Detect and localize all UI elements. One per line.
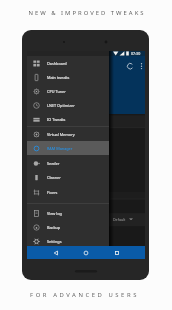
staticText: 07:30 (131, 51, 141, 56)
button[interactable]: Fixers (27, 185, 109, 199)
staticText: CPU Tuner (47, 89, 66, 94)
button[interactable]: Dashboard (27, 56, 109, 70)
button[interactable]: CPU Tuner (27, 84, 109, 98)
button[interactable]: Virtual Memory (27, 127, 109, 141)
staticText: Settings (47, 239, 62, 244)
staticText: Backup (47, 225, 61, 230)
button[interactable]: Backup (27, 220, 109, 234)
button[interactable]: Cleaner (27, 170, 109, 184)
button[interactable]: Recents (110, 246, 123, 259)
staticText: Virtual Memory (47, 132, 75, 137)
button[interactable]: Default (113, 214, 133, 224)
button[interactable]: View log (27, 206, 109, 220)
button[interactable]: RAM Manager (27, 141, 109, 155)
staticText: RAM Manager (47, 146, 73, 151)
button[interactable]: Seeder (27, 156, 109, 170)
staticText: IO Tweaks (47, 117, 66, 122)
staticText: View log (47, 211, 62, 216)
button[interactable]: Home (79, 246, 92, 259)
staticText: Default (113, 217, 126, 222)
button[interactable]: LNET Optimizer (27, 98, 109, 112)
staticText: Cleaner (47, 175, 61, 180)
staticText: FOR ADVANCED USERS (30, 291, 139, 299)
staticText: Main tweaks (47, 75, 70, 80)
staticText: Seeder (47, 161, 60, 166)
staticText: Fixers (47, 190, 58, 195)
button[interactable]: IO Tweaks (27, 112, 109, 126)
staticText: Dashboard (47, 61, 67, 66)
staticText: LNET Optimizer (47, 103, 75, 108)
staticText: NEW & IMPROVED TWEAKS (28, 9, 146, 17)
button[interactable]: Main tweaks (27, 70, 109, 84)
button[interactable]: Settings (27, 234, 109, 248)
button[interactable]: Back (49, 246, 62, 259)
